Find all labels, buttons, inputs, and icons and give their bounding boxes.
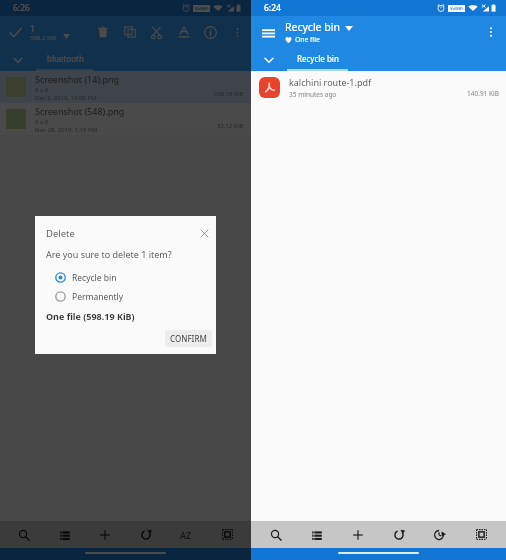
staticText: 6:24 bbox=[264, 2, 281, 14]
button[interactable]: Recycle bin bbox=[35, 268, 216, 287]
staticText: 140.91 KiB bbox=[467, 89, 499, 98]
button[interactable]: Cut bbox=[143, 16, 170, 48]
button[interactable]: Recycle bin bbox=[285, 20, 353, 44]
staticText: VoWiFi bbox=[195, 6, 209, 11]
staticText: 0 x 0 bbox=[35, 118, 49, 126]
staticText: Dec 2, 2019, 10:05 PM bbox=[35, 94, 97, 102]
staticText: Screenshot (14).png bbox=[35, 73, 120, 85]
button[interactable]: More options bbox=[476, 16, 506, 48]
button[interactable]: 1 bbox=[30, 22, 57, 42]
staticText: Are you sure to delete 1 item? bbox=[46, 248, 172, 260]
button[interactable]: Search bbox=[8, 521, 40, 548]
staticText: Recycle bin bbox=[72, 272, 117, 284]
button[interactable]: Rename bbox=[170, 16, 197, 48]
button[interactable]: Recycle bin bbox=[287, 48, 348, 71]
staticText: Permanently bbox=[72, 291, 124, 303]
button[interactable]: kalchini route-1.pdf bbox=[251, 71, 506, 103]
button[interactable]: Delete bbox=[89, 16, 116, 48]
button[interactable]: Screenshot (548).png bbox=[0, 103, 251, 135]
button[interactable]: Done bbox=[0, 16, 30, 48]
button[interactable]: Add bbox=[89, 521, 121, 548]
button[interactable]: View bbox=[301, 521, 333, 548]
button[interactable]: Permanently bbox=[35, 287, 216, 306]
staticText: Nov 28, 2019, 1:19 PM bbox=[35, 126, 98, 134]
staticText: One file bbox=[295, 35, 320, 44]
staticText: 6:26 bbox=[13, 2, 30, 14]
button[interactable]: Close bbox=[196, 225, 212, 241]
button[interactable]: bluetooth bbox=[36, 48, 94, 71]
staticText: AZ bbox=[180, 529, 192, 541]
staticText: bluetooth bbox=[47, 53, 84, 64]
button[interactable]: Add bbox=[342, 521, 374, 548]
button[interactable]: Expand bbox=[251, 48, 287, 71]
staticText: 35 minutes ago bbox=[289, 90, 337, 99]
staticText: Recycle bin bbox=[285, 20, 340, 34]
button[interactable]: History bbox=[424, 521, 456, 548]
button[interactable]: Sort bbox=[170, 521, 202, 548]
staticText: 32.12 KiB bbox=[217, 122, 244, 130]
staticText: Recycle bin bbox=[297, 53, 339, 64]
staticText: CONFIRM bbox=[170, 333, 207, 344]
button[interactable]: Select bbox=[465, 521, 497, 548]
staticText: 598.2 KiB bbox=[30, 34, 57, 42]
button[interactable]: CONFIRM bbox=[165, 330, 212, 347]
button[interactable]: Screenshot (14).png bbox=[0, 71, 251, 103]
staticText: Delete bbox=[46, 227, 75, 240]
button[interactable]: Refresh bbox=[130, 521, 162, 548]
staticText: 0 x 0 bbox=[35, 86, 49, 94]
button[interactable]: Search bbox=[260, 521, 292, 548]
staticText: One file (598.19 KiB) bbox=[46, 310, 135, 322]
staticText: 598.19 KiB bbox=[214, 90, 244, 98]
button[interactable]: View bbox=[49, 521, 81, 548]
staticText: Screenshot (548).png bbox=[35, 105, 125, 117]
staticText: kalchini route-1.pdf bbox=[289, 76, 372, 88]
button[interactable]: Menu bbox=[251, 16, 285, 48]
button[interactable]: Properties bbox=[197, 16, 224, 48]
button[interactable]: More options bbox=[224, 16, 251, 48]
button[interactable]: Select bbox=[211, 521, 243, 548]
button[interactable]: Copy bbox=[116, 16, 143, 48]
staticText: 1 bbox=[30, 22, 36, 34]
button[interactable]: Refresh bbox=[383, 521, 415, 548]
button[interactable]: Expand bbox=[0, 48, 36, 71]
staticText: VoWiFi bbox=[450, 6, 464, 11]
